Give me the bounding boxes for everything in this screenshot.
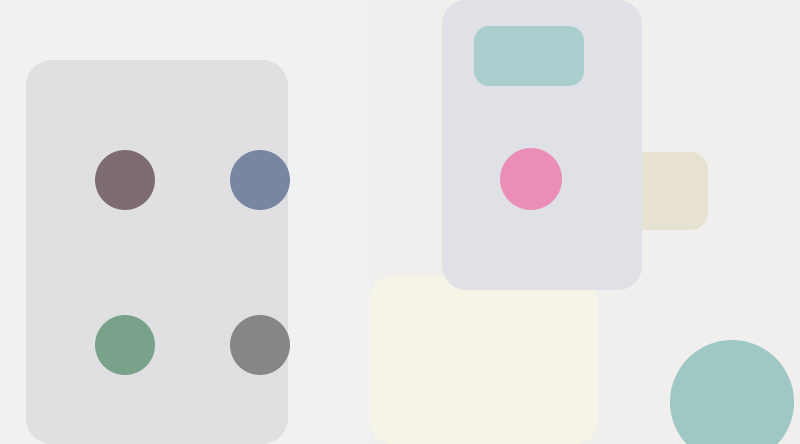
button[interactable]: Category [95,315,155,375]
button[interactable]: Category [230,315,290,375]
button[interactable]: Summary [474,26,584,86]
button[interactable]: Category [230,150,290,210]
button[interactable]: Category [95,150,155,210]
